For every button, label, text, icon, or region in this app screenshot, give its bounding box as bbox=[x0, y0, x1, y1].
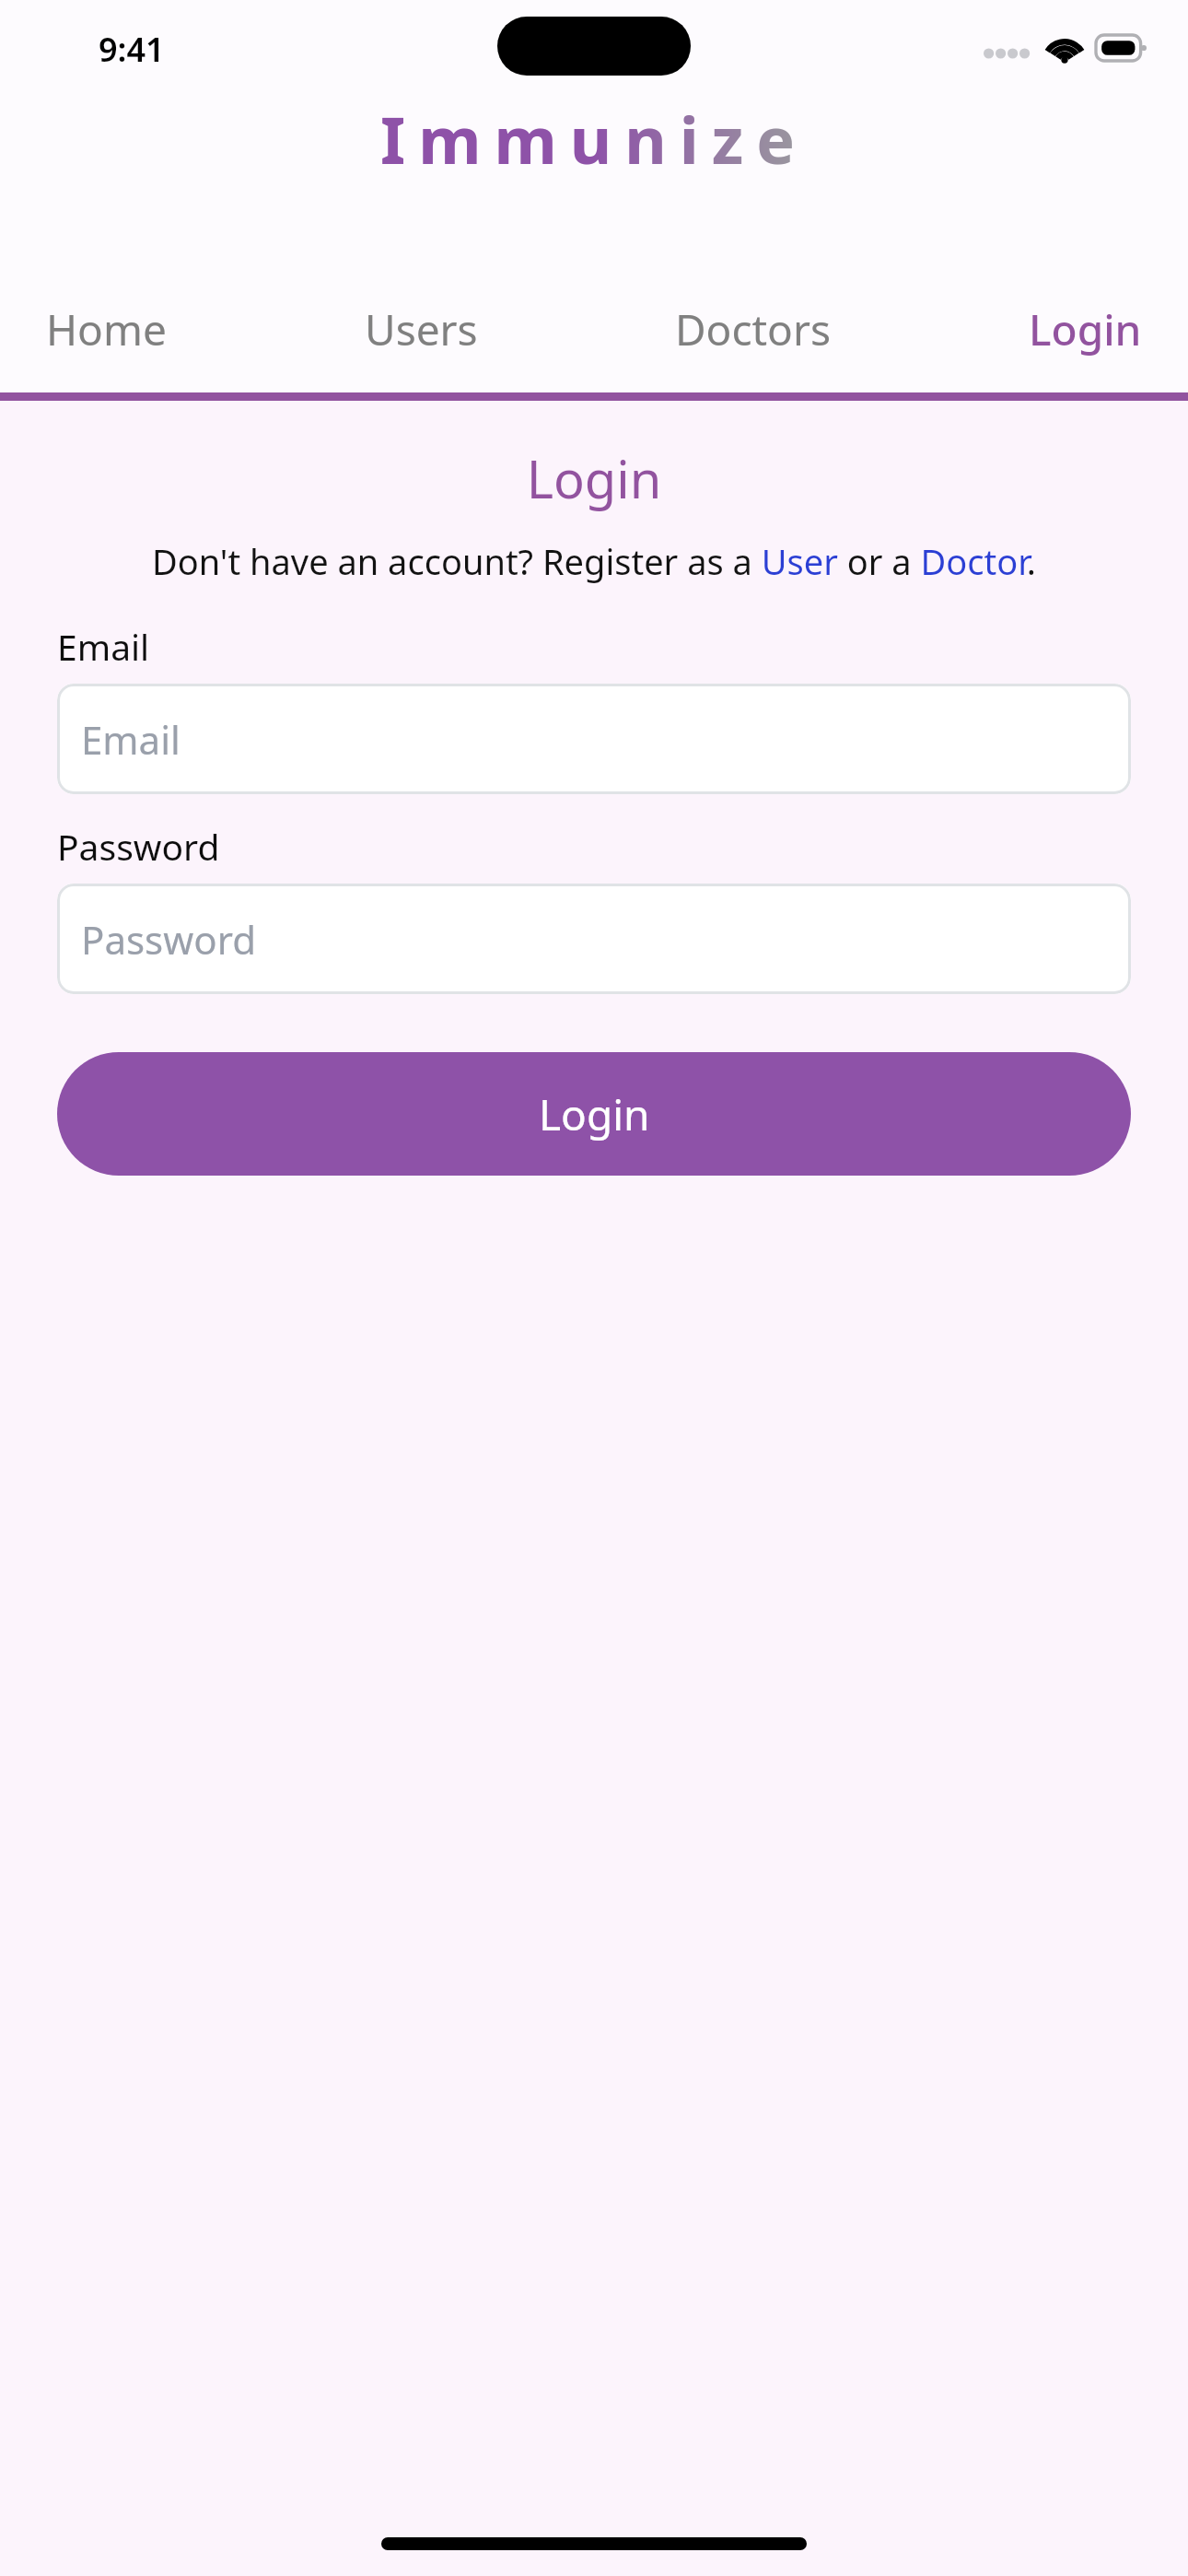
staticText: Home bbox=[46, 300, 167, 358]
button[interactable]: Password bbox=[57, 884, 1131, 994]
button[interactable]: Doctors bbox=[666, 295, 840, 364]
staticText: Immunize bbox=[380, 95, 808, 182]
staticText: Login bbox=[1029, 300, 1142, 358]
button[interactable]: Email bbox=[57, 684, 1131, 794]
staticText: Login bbox=[539, 1085, 650, 1143]
staticText: 9:41 bbox=[99, 27, 165, 72]
button[interactable]: Login bbox=[57, 1052, 1131, 1176]
staticText: Users bbox=[365, 300, 478, 358]
staticText: Login bbox=[0, 443, 1188, 513]
button[interactable]: Home bbox=[37, 295, 176, 364]
staticText: Email bbox=[81, 713, 181, 766]
button[interactable]: Users bbox=[355, 295, 487, 364]
staticText: Password bbox=[81, 913, 256, 966]
staticText: Password bbox=[57, 822, 220, 871]
button[interactable]: Login bbox=[1019, 295, 1151, 364]
staticText: Don't have an account? Register as a Use… bbox=[0, 537, 1188, 585]
staticText: Email bbox=[57, 622, 150, 671]
staticText: Doctors bbox=[675, 300, 831, 358]
